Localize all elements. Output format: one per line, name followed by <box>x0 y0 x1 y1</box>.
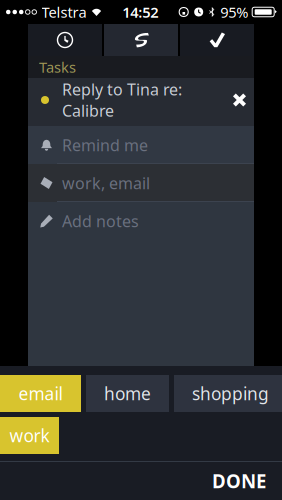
staticText: Telstra <box>41 2 86 22</box>
staticText: shopping <box>192 382 269 405</box>
staticText: 95% <box>220 2 248 22</box>
button[interactable]: shopping <box>174 375 282 412</box>
button[interactable]: Add notes <box>28 202 254 240</box>
button[interactable]: Remind me <box>28 126 254 164</box>
staticText: DONE <box>212 469 266 493</box>
staticText: email <box>18 382 62 405</box>
button[interactable]: Completed <box>180 24 254 56</box>
staticText: Reply to Tina re: Calibre <box>62 79 182 121</box>
staticText: 14:52 <box>122 2 158 22</box>
staticText: Tasks <box>39 57 76 77</box>
button[interactable]: home <box>86 375 169 412</box>
button[interactable]: work, email <box>28 164 254 202</box>
button[interactable]: DONE <box>196 460 282 500</box>
staticText: work, email <box>62 172 150 194</box>
staticText: Add notes <box>62 210 139 232</box>
button[interactable]: Recent <box>28 24 102 56</box>
staticText: work <box>9 424 49 447</box>
button[interactable]: Lists <box>104 24 178 56</box>
staticText: home <box>104 382 151 405</box>
staticText: Remind me <box>62 134 148 156</box>
button[interactable]: Reply to Tina re: Calibre <box>28 78 254 126</box>
button[interactable]: email <box>0 375 81 412</box>
button[interactable]: work <box>0 417 59 454</box>
